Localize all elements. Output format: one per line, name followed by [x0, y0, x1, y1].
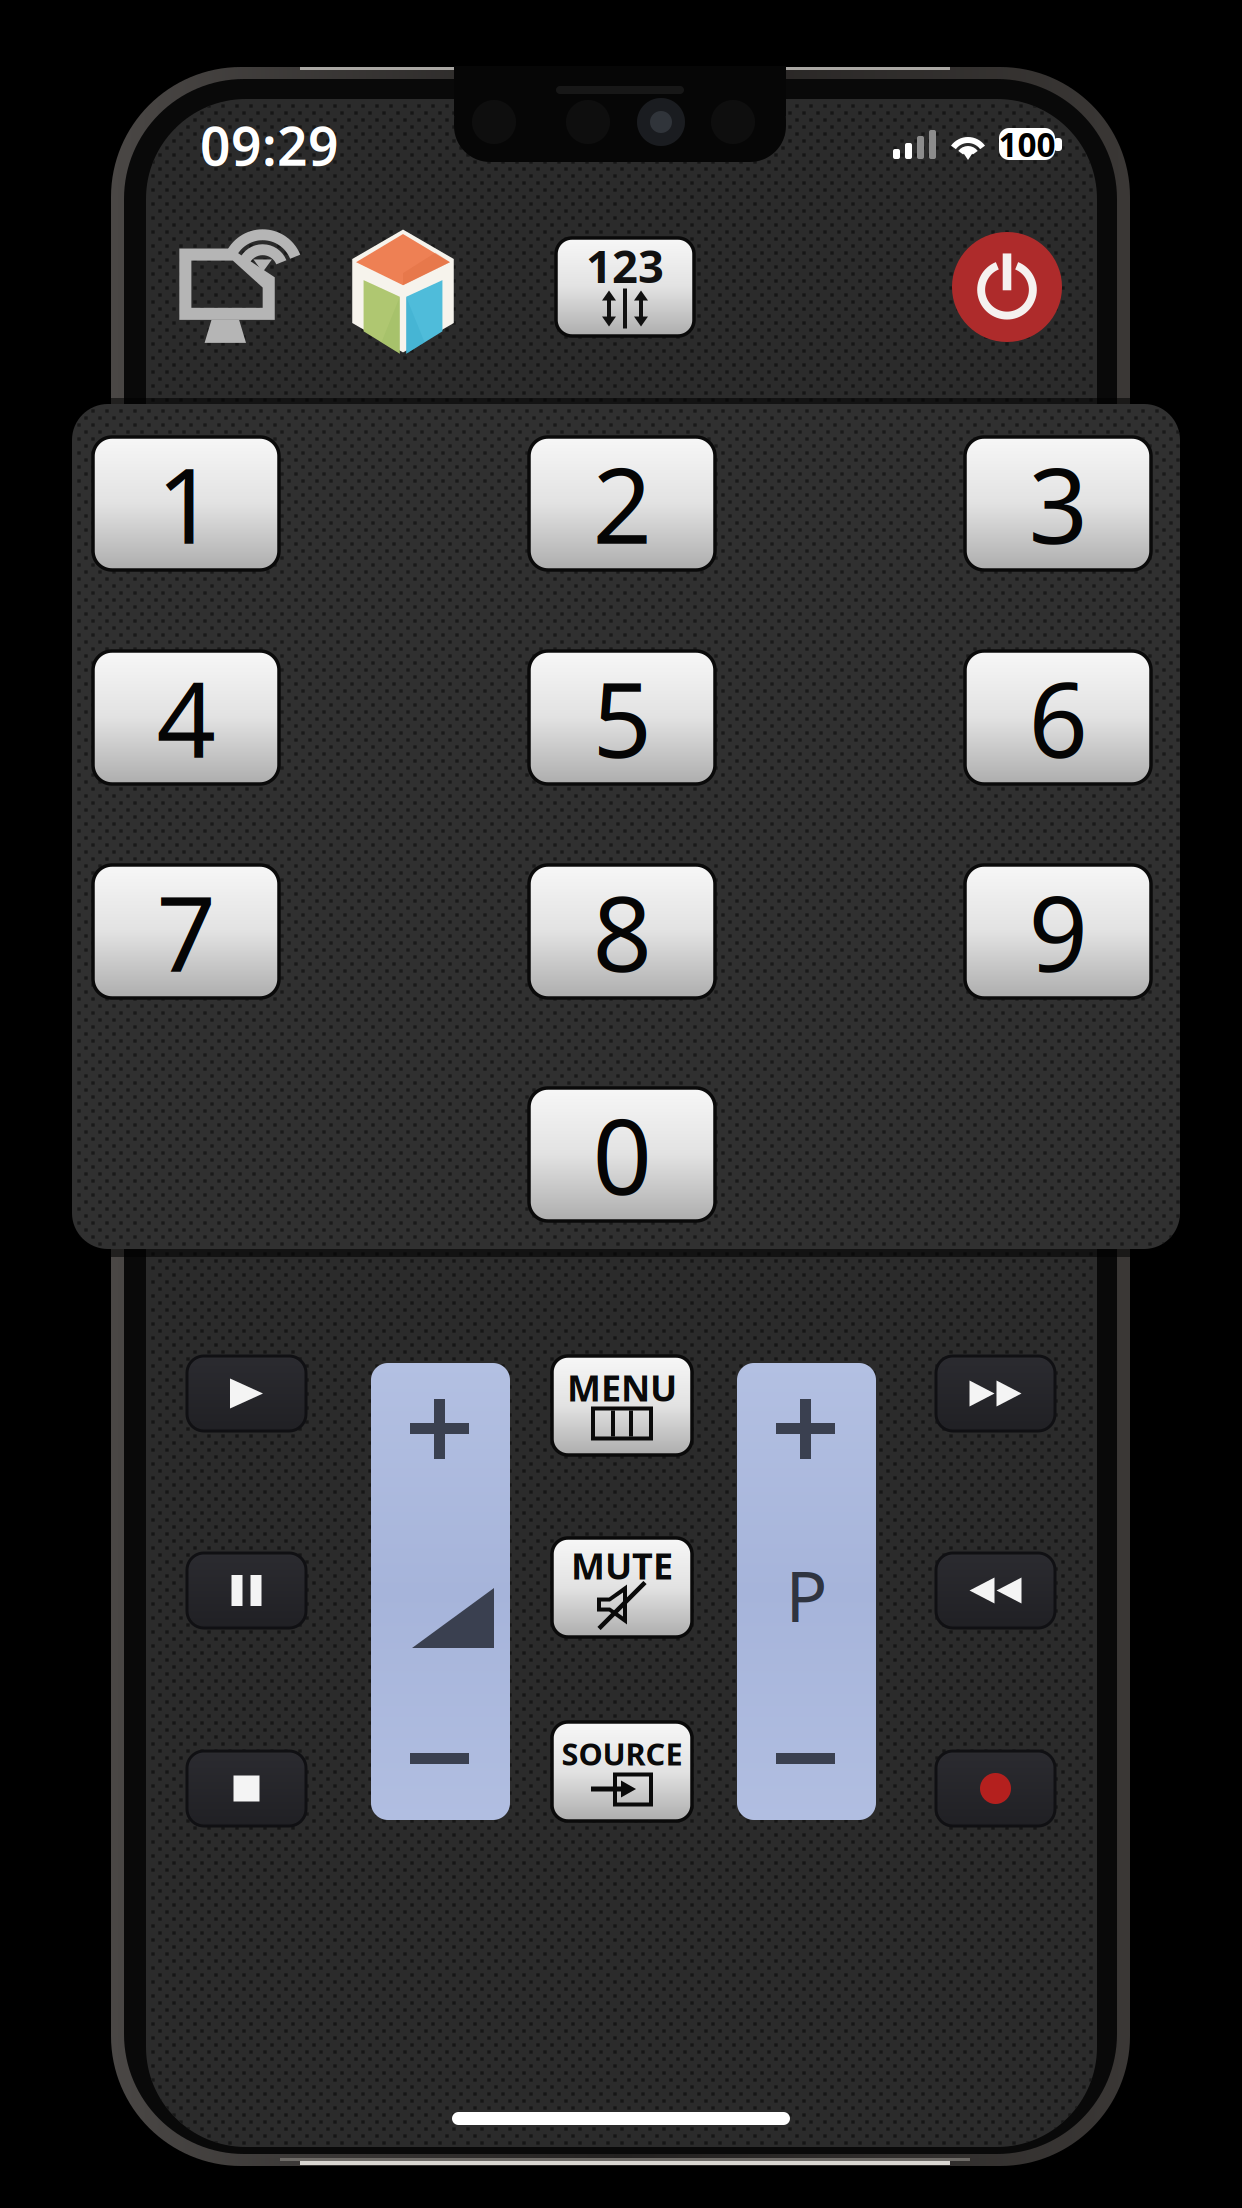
staticText: 8: [592, 862, 651, 1000]
staticText: 100: [998, 122, 1055, 166]
staticText: 2: [592, 434, 651, 572]
staticText: 123: [586, 235, 664, 296]
button[interactable]: 6: [965, 651, 1151, 784]
staticText: 4: [156, 648, 215, 786]
button[interactable]: 3: [965, 437, 1151, 570]
button[interactable]: Programme: [737, 1363, 876, 1820]
button[interactable]: 8: [529, 865, 715, 998]
button[interactable]: 5: [529, 651, 715, 784]
staticText: 6: [1028, 648, 1087, 786]
button[interactable]: Stop: [187, 1751, 306, 1826]
button[interactable]: Fast forward: [936, 1356, 1055, 1431]
staticText: SOURCE: [561, 1733, 682, 1774]
button[interactable]: 0: [529, 1088, 715, 1221]
button[interactable]: Record: [936, 1751, 1055, 1826]
button[interactable]: MENU: [552, 1356, 692, 1455]
staticText: MUTE: [571, 1542, 673, 1589]
staticText: 5: [592, 648, 651, 786]
staticText: 3: [1028, 434, 1087, 572]
button[interactable]: Rewind: [936, 1553, 1055, 1628]
button[interactable]: Volume: [371, 1363, 510, 1820]
staticText: 1: [156, 434, 215, 572]
staticText: 7: [156, 862, 215, 1000]
button[interactable]: Numeric keypad: [556, 238, 694, 336]
button[interactable]: 4: [93, 651, 279, 784]
button[interactable]: Power: [952, 232, 1062, 342]
button[interactable]: 7: [93, 865, 279, 998]
button[interactable]: 1: [93, 437, 279, 570]
button[interactable]: MUTE: [552, 1538, 692, 1637]
button[interactable]: SOURCE: [552, 1722, 692, 1821]
button[interactable]: Pause: [187, 1553, 306, 1628]
staticText: 0: [592, 1085, 651, 1223]
button[interactable]: Play: [187, 1356, 306, 1431]
staticText: P: [785, 1549, 827, 1641]
button[interactable]: Device: [349, 227, 457, 355]
staticText: 9: [1028, 862, 1087, 1000]
staticText: MENU: [567, 1364, 677, 1411]
staticText: 09:29: [200, 110, 339, 180]
button[interactable]: Connect to TV: [177, 229, 292, 344]
button[interactable]: 2: [529, 437, 715, 570]
button[interactable]: 9: [965, 865, 1151, 998]
